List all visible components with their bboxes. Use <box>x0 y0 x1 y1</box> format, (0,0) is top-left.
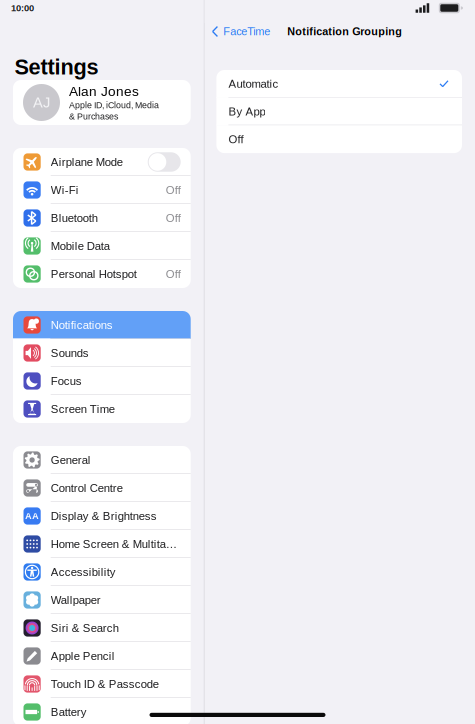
button[interactable]: FaceTime <box>212 25 274 38</box>
staticText: Off <box>166 212 181 224</box>
staticText: Display & Brightness <box>51 510 157 522</box>
staticText: Alan Jones <box>69 84 139 99</box>
staticText: Airplane Mode <box>51 156 123 168</box>
staticText: Siri & Search <box>51 622 119 634</box>
button[interactable]: Apple Pencil <box>13 642 191 670</box>
button[interactable]: Battery <box>13 698 191 724</box>
staticText: AA <box>25 511 39 521</box>
button[interactable]: Accessibility <box>13 558 191 586</box>
staticText: Notifications <box>51 319 113 331</box>
staticText: General <box>51 454 91 466</box>
staticText: Mobile Data <box>51 240 110 252</box>
staticText: Wallpaper <box>51 594 101 606</box>
staticText: Screen Time <box>51 403 115 415</box>
button[interactable]: Mobile Data <box>13 232 191 260</box>
staticText: Home Screen & Multitas... <box>51 538 179 550</box>
button[interactable]: Notifications <box>13 311 191 339</box>
staticText: AJ <box>33 94 50 111</box>
button[interactable]: Siri & Search <box>13 614 191 642</box>
staticText: By App <box>228 105 265 118</box>
staticText: Sounds <box>51 347 89 359</box>
staticText: Touch ID & Passcode <box>51 678 159 690</box>
staticText: Off <box>166 184 181 196</box>
button[interactable]: Touch ID & Passcode <box>13 670 191 698</box>
staticText: Bluetooth <box>51 212 98 224</box>
button[interactable]: Control Centre <box>13 474 191 502</box>
button[interactable]: Screen Time <box>13 395 191 423</box>
staticText: Wi-Fi <box>51 184 79 196</box>
button[interactable]: AJ <box>13 80 191 125</box>
button[interactable]: Sounds <box>13 339 191 367</box>
staticText: Control Centre <box>51 482 123 494</box>
button[interactable]: Bluetooth <box>13 204 191 232</box>
button[interactable]: Focus <box>13 367 191 395</box>
staticText: Personal Hotspot <box>51 268 137 280</box>
button[interactable]: Airplane Mode <box>13 148 191 176</box>
staticText: & Purchases <box>69 111 118 121</box>
button[interactable]: Wi-Fi <box>13 176 191 204</box>
button[interactable]: Personal Hotspot <box>13 260 191 288</box>
staticText: Settings <box>14 55 98 79</box>
staticText: Notification Grouping <box>287 25 402 38</box>
button[interactable]: Home Screen & Multitas... <box>13 530 191 558</box>
button[interactable]: General <box>13 446 191 474</box>
button[interactable]: By App <box>216 98 462 125</box>
staticText: 10:00 <box>11 3 34 13</box>
staticText: Off <box>166 268 181 280</box>
staticText: Automatic <box>228 77 278 90</box>
staticText: Off <box>228 133 243 146</box>
staticText: Accessibility <box>51 566 116 578</box>
staticText: Focus <box>51 375 82 387</box>
button[interactable]: Wallpaper <box>13 586 191 614</box>
button[interactable]: Off <box>216 125 462 153</box>
staticText: FaceTime <box>223 25 270 38</box>
staticText: Apple Pencil <box>51 650 115 662</box>
staticText: Apple ID, iCloud, Media <box>69 100 159 110</box>
button[interactable]: Automatic <box>216 70 462 98</box>
staticText: Battery <box>51 706 87 718</box>
button[interactable]: AA <box>13 502 191 530</box>
